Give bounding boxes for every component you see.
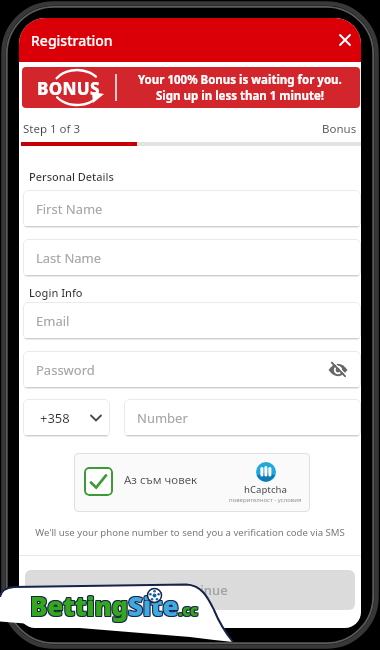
staticText: BettingSite.cc <box>29 589 197 624</box>
staticText: Sign up in less than 1 minute! <box>156 88 325 104</box>
staticText: BettingSite.cc <box>31 588 199 623</box>
button[interactable]: +358 <box>23 399 110 437</box>
button[interactable]: BONUS <box>22 67 360 108</box>
button[interactable] <box>335 30 355 50</box>
button[interactable]: Email <box>23 302 361 340</box>
staticText: Password <box>36 361 95 379</box>
button[interactable] <box>327 359 349 381</box>
staticText: Continue <box>171 581 228 599</box>
staticText: +358 <box>40 409 70 427</box>
staticText: Email <box>36 312 70 330</box>
staticText: First Name <box>36 200 103 218</box>
staticText: Personal Details <box>29 169 114 184</box>
staticText: We'll use your phone number to send you … <box>19 526 361 539</box>
button[interactable]: First Name <box>23 190 361 228</box>
button[interactable]: Password <box>23 351 361 389</box>
button[interactable] <box>84 467 113 496</box>
button[interactable]: hCaptcha <box>229 461 302 504</box>
button[interactable]: Number <box>124 399 361 437</box>
staticText: BettingSite.cc <box>30 587 198 622</box>
staticText: BettingSite.cc <box>29 588 197 623</box>
staticText: Your 100% Bonus is waiting for you. <box>138 72 342 88</box>
staticText: Bonus <box>322 121 357 137</box>
staticText: BettingSite.cc <box>31 589 199 624</box>
staticText: поверителност - условия <box>229 496 302 504</box>
staticText: Аз съм човек <box>124 472 198 488</box>
staticText: BettingSite.cc <box>30 589 198 624</box>
staticText: BONUS <box>37 77 100 100</box>
staticText: BettingSite.cc <box>31 587 199 622</box>
staticText: BettingSite.cc <box>30 588 198 623</box>
staticText: Step 1 of 3 <box>23 121 81 137</box>
staticText: BettingSite.cc <box>29 587 197 622</box>
staticText: Login Info <box>29 285 83 300</box>
staticText: Registration <box>31 31 113 50</box>
staticText: Number <box>137 409 188 427</box>
staticText: Last Name <box>36 249 102 267</box>
button[interactable]: Last Name <box>23 239 361 277</box>
staticText: hCaptcha <box>244 483 288 496</box>
button[interactable]: Continue <box>25 570 355 610</box>
